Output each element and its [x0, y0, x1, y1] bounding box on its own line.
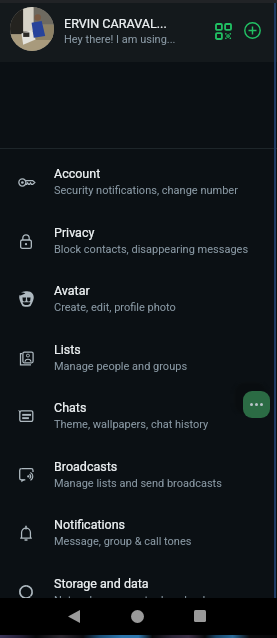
staticText: Chats	[54, 400, 87, 415]
button[interactable]: Lists	[0, 328, 277, 387]
staticText: Settings	[42, 12, 99, 30]
staticText: ERVIN CARAVAL...	[64, 16, 167, 31]
button[interactable]: Account	[0, 152, 277, 211]
staticText: Manage people and groups	[54, 360, 188, 373]
button[interactable]: Back	[62, 604, 86, 628]
button[interactable]: Home	[125, 604, 149, 628]
staticText: Storage and data	[54, 576, 149, 591]
button[interactable]: Chats	[0, 386, 277, 445]
staticText: Notifications	[54, 517, 126, 532]
button[interactable]: Recent apps	[188, 604, 212, 628]
button[interactable]: Add account	[240, 18, 264, 42]
staticText: Broadcasts	[54, 459, 118, 474]
button[interactable]: Back	[6, 9, 30, 33]
button[interactable]: Notifications	[0, 503, 277, 562]
staticText: Block contacts, disappearing messages	[54, 243, 249, 256]
button[interactable]: More options	[243, 391, 270, 418]
staticText: Privacy	[54, 225, 95, 240]
button[interactable]: Search	[243, 8, 269, 34]
staticText: Manage lists and send broadcasts	[54, 477, 222, 490]
staticText: Create, edit, profile photo	[54, 301, 176, 314]
staticText: 3:57	[25, 7, 45, 19]
button[interactable]: ERVIN CARAVAL...	[0, 0, 277, 62]
staticText: Lists	[54, 342, 81, 357]
staticText: Network usage, auto-download	[54, 594, 206, 607]
button[interactable]: Broadcasts	[0, 445, 277, 504]
staticText: Theme, wallpapers, chat history	[54, 418, 209, 431]
button[interactable]: Storage and data	[0, 562, 277, 621]
staticText: Account	[54, 166, 101, 181]
button[interactable]: QR code	[211, 19, 235, 43]
staticText: Security notifications, change number	[54, 184, 238, 197]
button[interactable]: Privacy	[0, 211, 277, 270]
button[interactable]: Avatar	[0, 269, 277, 328]
staticText: Hey there! I am using...	[64, 33, 176, 46]
staticText: Avatar	[54, 283, 90, 298]
staticText: Message, group & call tones	[54, 535, 192, 548]
